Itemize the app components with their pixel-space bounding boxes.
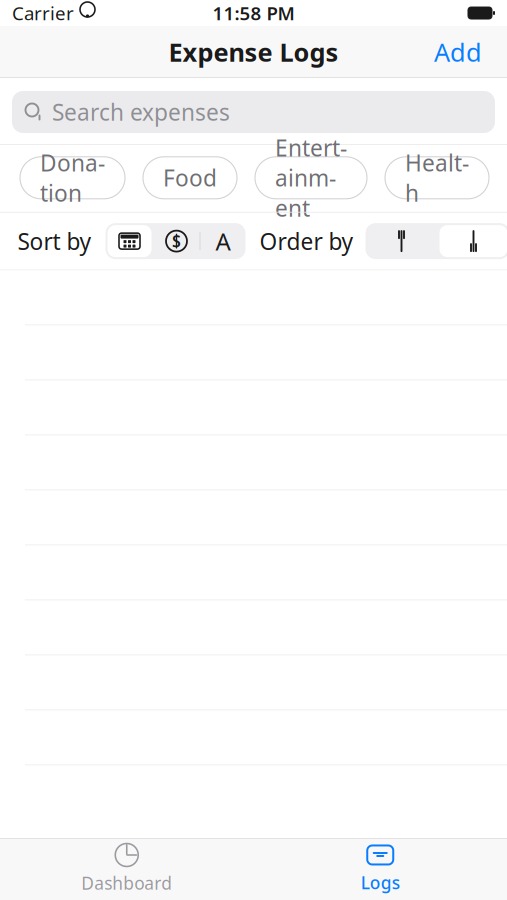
staticText: Search expenses (52, 97, 230, 127)
staticText: Sort by (17, 226, 91, 256)
staticText: S (172, 230, 181, 252)
staticText: Health (405, 148, 469, 208)
staticText: Dashboard (81, 871, 172, 894)
button[interactable]: Food (143, 157, 237, 199)
staticText: A (215, 225, 230, 257)
button[interactable]: Sort by date (105, 223, 153, 259)
staticText: Carrier (12, 1, 74, 25)
staticText: Entertainment (275, 133, 347, 223)
button[interactable]: Sort by amount (153, 223, 199, 259)
staticText: Donation (40, 148, 105, 208)
button[interactable]: Descending (437, 223, 507, 259)
button[interactable]: Add (422, 27, 494, 77)
button[interactable]: Donation (20, 157, 125, 199)
staticText: Food (163, 163, 217, 193)
button[interactable]: Entertainment (255, 157, 367, 199)
button[interactable]: Ascending (365, 223, 437, 259)
button[interactable]: Search expenses (12, 91, 495, 133)
staticText: Logs (361, 871, 400, 894)
button[interactable]: Dashboard (0, 835, 253, 900)
staticText: Expense Logs (168, 35, 338, 69)
button[interactable]: Logs (253, 836, 507, 900)
staticText: Order by (259, 226, 353, 256)
button[interactable]: Health (385, 157, 489, 199)
staticText: 11:58 PM (212, 1, 294, 25)
staticText: Add (434, 35, 482, 69)
button[interactable]: Sort by name (200, 223, 245, 259)
